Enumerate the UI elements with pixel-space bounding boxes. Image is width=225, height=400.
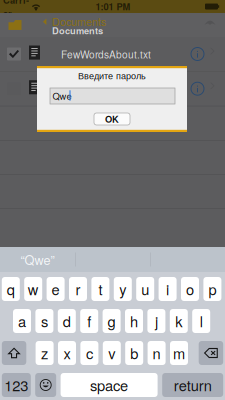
- staticText: n: [153, 342, 161, 363]
- button[interactable]: Folders: [2, 13, 28, 37]
- staticText: l: [200, 310, 203, 331]
- staticText: e: [52, 278, 60, 299]
- button[interactable]: Delete: [199, 341, 223, 365]
- button[interactable]: Documents: [43, 14, 108, 30]
- button[interactable]: [0, 72, 225, 106]
- staticText: Documents: [52, 14, 106, 29]
- button[interactable]: o: [181, 277, 199, 301]
- button[interactable]: Shift: [2, 341, 26, 365]
- button[interactable]: OK: [94, 113, 130, 125]
- button[interactable]: 123: [2, 373, 31, 397]
- button[interactable]: j: [147, 309, 165, 333]
- button[interactable]: y: [114, 277, 132, 301]
- staticText: x: [63, 342, 70, 363]
- staticText: m: [173, 342, 185, 363]
- button[interactable]: FewWordsAbout.txt: [0, 37, 225, 71]
- button[interactable]: d: [58, 309, 76, 333]
- button[interactable]: f: [80, 309, 98, 333]
- staticText: r: [75, 278, 80, 299]
- button[interactable]: g: [103, 309, 121, 333]
- staticText: q: [7, 278, 15, 299]
- staticText: j: [155, 310, 158, 331]
- staticText: return: [174, 374, 212, 395]
- button[interactable]: w: [24, 277, 42, 301]
- button[interactable]: “Qwe”: [0, 247, 75, 272]
- staticText: OK: [105, 112, 119, 126]
- staticText: d: [63, 310, 71, 331]
- button[interactable]: v: [103, 341, 121, 365]
- button[interactable]: q: [2, 277, 20, 301]
- button[interactable]: Emoji: [35, 373, 56, 397]
- button[interactable]: u: [136, 277, 154, 301]
- button[interactable]: z: [36, 341, 54, 365]
- button[interactable]: i: [159, 277, 177, 301]
- button[interactable]: space: [61, 373, 158, 397]
- staticText: 1:01 PM: [95, 0, 130, 13]
- button[interactable]: h: [125, 309, 143, 333]
- button[interactable]: m: [170, 341, 188, 365]
- staticText: h: [130, 310, 138, 331]
- staticText: u: [141, 278, 149, 299]
- button[interactable]: n: [148, 341, 166, 365]
- button[interactable]: l: [192, 309, 210, 333]
- staticText: b: [130, 342, 138, 363]
- staticText: a: [18, 310, 26, 331]
- staticText: y: [119, 278, 126, 299]
- staticText: “Qwe”: [20, 250, 54, 268]
- staticText: Carrier: [3, 0, 29, 20]
- button[interactable]: b: [125, 341, 143, 365]
- staticText: v: [108, 342, 115, 363]
- staticText: c: [86, 342, 93, 363]
- staticText: p: [208, 278, 216, 299]
- staticText: Введите пароль: [78, 71, 146, 81]
- staticText: Qwe: [52, 89, 71, 102]
- staticText: FewWordsAbout.txt: [61, 47, 151, 61]
- button[interactable]: x: [58, 341, 76, 365]
- staticText: f: [87, 310, 91, 331]
- staticText: space: [90, 374, 128, 395]
- button[interactable]: r: [69, 277, 87, 301]
- button[interactable]: t: [91, 277, 109, 301]
- staticText: Documents: [52, 24, 103, 37]
- button[interactable]: s: [35, 309, 53, 333]
- button[interactable]: e: [47, 277, 65, 301]
- staticText: k: [175, 310, 182, 331]
- button[interactable]: p: [203, 277, 221, 301]
- staticText: g: [108, 310, 116, 331]
- button[interactable]: a: [13, 309, 31, 333]
- staticText: s: [41, 310, 48, 331]
- staticText: w: [28, 278, 39, 299]
- staticText: z: [41, 342, 48, 363]
- staticText: 123: [4, 374, 28, 395]
- button[interactable]: k: [170, 309, 188, 333]
- button[interactable]: c: [80, 341, 98, 365]
- staticText: i: [166, 278, 169, 299]
- staticText: o: [186, 278, 194, 299]
- button[interactable]: return: [162, 373, 223, 397]
- staticText: t: [98, 278, 102, 299]
